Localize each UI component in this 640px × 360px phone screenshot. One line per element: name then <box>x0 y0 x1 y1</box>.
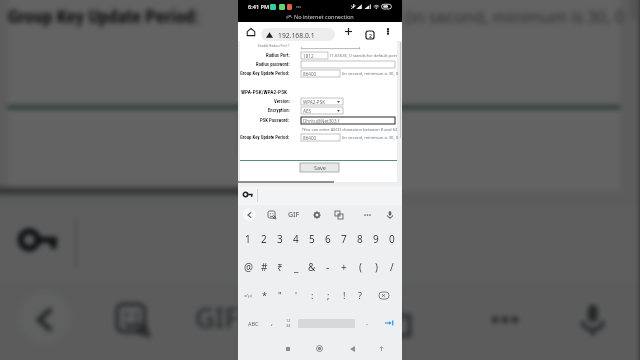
button[interactable]: Settings <box>265 281 351 359</box>
staticText: Encryption: <box>268 108 290 114</box>
button[interactable]: AES <box>301 107 343 114</box>
button[interactable]: Password suggestion <box>238 186 256 205</box>
button[interactable]: Recents <box>278 337 297 360</box>
button[interactable]: Next field <box>378 309 400 337</box>
button[interactable]: Dhritu@Net303.f <box>301 117 395 124</box>
staticText: _ <box>294 260 299 274</box>
button[interactable]: ) <box>368 253 384 281</box>
button[interactable]: & <box>304 253 320 281</box>
staticText: GIF <box>288 210 300 220</box>
staticText: - <box>326 260 330 274</box>
button[interactable]: , <box>265 309 279 337</box>
button[interactable]: Back <box>243 208 256 221</box>
button[interactable]: Back <box>343 337 362 360</box>
staticText: 4 <box>293 232 299 246</box>
button[interactable]: More options <box>381 24 395 39</box>
button[interactable]: GIF <box>283 205 305 225</box>
button[interactable]: 3 <box>272 225 288 253</box>
button[interactable]: " <box>272 281 288 309</box>
button[interactable]: 192.168.0.1 <box>261 28 335 41</box>
button[interactable]: Save <box>242 117 394 152</box>
staticText: ; <box>327 289 330 301</box>
button[interactable]: * <box>256 281 272 309</box>
staticText: GIF <box>195 300 242 339</box>
button[interactable]: _ <box>288 253 304 281</box>
button[interactable]: / <box>384 253 400 281</box>
button[interactable]: 9 <box>368 225 384 253</box>
button[interactable]: More <box>356 205 378 225</box>
button[interactable]: @ <box>240 253 256 281</box>
button[interactable]: ! <box>336 281 352 309</box>
button[interactable]: ' <box>288 281 304 309</box>
staticText: 12 <box>286 318 291 323</box>
button[interactable]: ; <box>320 281 336 309</box>
button[interactable] <box>301 61 395 68</box>
button[interactable]: New tab <box>340 24 357 39</box>
button[interactable]: 8 <box>352 225 368 253</box>
button[interactable]: WPA2-PSK <box>301 98 343 105</box>
button[interactable]: =\< <box>240 281 256 309</box>
button[interactable]: 86400 <box>301 70 340 77</box>
button[interactable]: + <box>336 253 352 281</box>
button[interactable]: 1 <box>240 225 256 253</box>
button[interactable]: 7 <box>382 359 445 360</box>
button[interactable]: 86400 <box>301 134 340 141</box>
button[interactable]: Password suggestion <box>0 207 70 281</box>
button[interactable]: 7 <box>336 225 352 253</box>
button[interactable]: ? <box>352 281 368 309</box>
button[interactable]: GIF <box>175 281 261 359</box>
button[interactable]: Home <box>242 24 259 39</box>
button[interactable]: : <box>304 281 320 309</box>
button[interactable]: 5 <box>304 225 320 253</box>
button[interactable]: 12 <box>281 309 295 337</box>
button[interactable]: 86400 <box>246 4 398 31</box>
button[interactable]: ABC <box>238 309 268 337</box>
button[interactable]: ₹ <box>272 253 288 281</box>
staticText: ) <box>375 260 378 274</box>
button[interactable]: Hide keyboard <box>372 337 391 360</box>
button[interactable]: Space <box>295 309 358 337</box>
staticText: 34 <box>286 323 291 328</box>
button[interactable]: Stickers <box>261 205 283 225</box>
staticText: WPA-PSK/WPA2-PSK <box>241 89 288 95</box>
staticText: Dhritu@Net303.f <box>303 118 340 124</box>
staticText: " <box>278 289 282 301</box>
button[interactable]: Back <box>19 292 70 343</box>
button[interactable]: Translate <box>328 205 350 225</box>
button[interactable]: Tabs <box>362 24 379 39</box>
staticText: 7 <box>341 232 347 246</box>
staticText: . <box>366 318 368 328</box>
staticText: ' <box>295 289 298 301</box>
button[interactable]: Stickers <box>90 281 175 359</box>
staticText: : <box>311 289 314 301</box>
button[interactable]: 6 <box>320 225 336 253</box>
button[interactable]: Home <box>310 337 329 360</box>
button[interactable]: Settings <box>306 205 328 225</box>
button[interactable]: Voice input <box>380 205 400 225</box>
button[interactable]: ( <box>352 253 368 281</box>
button[interactable]: 0 <box>384 225 400 253</box>
staticText: / <box>390 260 394 274</box>
button[interactable]: - <box>320 253 336 281</box>
staticText: PSK Password: <box>260 118 290 124</box>
button[interactable]: Voice input <box>554 281 632 359</box>
button[interactable]: 1812 <box>301 52 328 59</box>
button[interactable]: 2 <box>256 225 272 253</box>
staticText: ₹ <box>277 260 283 274</box>
button[interactable]: . <box>360 309 374 337</box>
button[interactable]: Translate <box>351 281 437 359</box>
button[interactable]: 4 <box>195 359 257 360</box>
button[interactable]: Backspace <box>368 281 400 309</box>
button[interactable]: 4 <box>288 225 304 253</box>
button[interactable]: More <box>460 281 546 359</box>
button[interactable]: # <box>256 253 272 281</box>
button[interactable]: Save <box>300 163 339 172</box>
